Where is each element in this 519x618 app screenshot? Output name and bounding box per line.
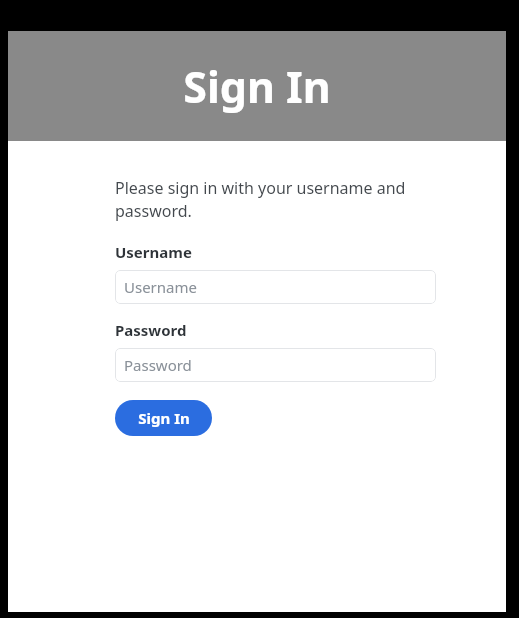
staticText: Username xyxy=(124,277,197,297)
button[interactable]: Sign In xyxy=(115,400,212,436)
staticText: Sign In xyxy=(138,408,190,428)
staticText: Sign In xyxy=(183,57,331,116)
staticText: Username xyxy=(115,242,192,262)
button[interactable]: Username xyxy=(115,270,436,304)
staticText: Password xyxy=(115,320,187,340)
staticText: Password xyxy=(124,355,192,375)
staticText: Please sign in with your username and pa… xyxy=(115,177,436,222)
button[interactable]: Password xyxy=(115,348,436,382)
